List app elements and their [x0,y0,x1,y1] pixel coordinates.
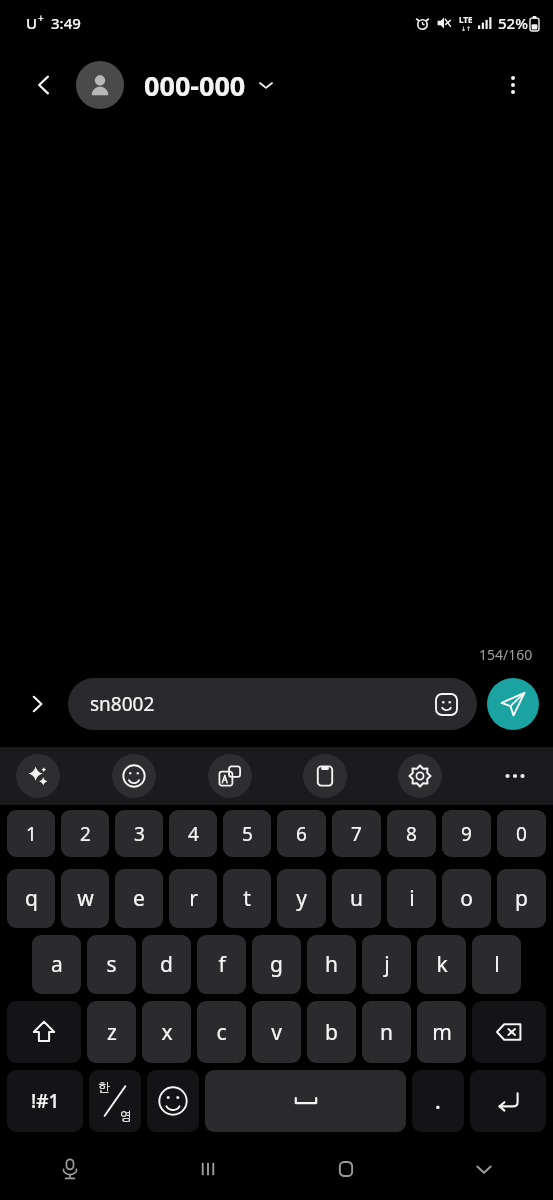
button[interactable]: 5 [223,810,271,857]
staticText: c [216,1018,227,1047]
staticText: 3:49 [51,13,81,33]
button[interactable]: 4 [169,810,217,857]
button[interactable]: More keyboard options [493,754,537,798]
button[interactable]: !#1 [7,1070,83,1132]
button[interactable]: . [412,1070,464,1132]
staticText: 4 [188,821,199,847]
button[interactable]: 000-000 [76,61,274,109]
staticText: u [350,884,363,913]
button[interactable]: m [417,1001,466,1063]
button[interactable]: y [277,869,326,928]
staticText: t [243,884,251,913]
staticText: x [161,1018,173,1047]
staticText: 2 [80,821,91,847]
button[interactable]: u [332,869,381,928]
staticText: b [325,1018,338,1047]
button[interactable]: Back [22,63,66,107]
button[interactable]: sn8002 [68,678,477,730]
staticText: e [133,884,145,913]
staticText: v [271,1018,282,1047]
staticText: 9 [461,821,472,847]
button[interactable]: Send [487,678,539,730]
button[interactable]: b [307,1001,356,1063]
staticText: 5 [242,821,253,847]
staticText: 000-000 [144,67,246,104]
button[interactable]: w [61,869,109,928]
staticText: n [380,1018,393,1047]
button[interactable]: Emoji keyboard [147,1070,199,1132]
staticText: h [325,950,338,979]
button[interactable]: Backspace [472,1001,546,1063]
staticText: LTE [459,14,473,25]
staticText: 8 [406,821,417,847]
button[interactable]: Shift [7,1001,81,1063]
button[interactable]: More options [491,63,535,107]
button[interactable]: v [252,1001,301,1063]
button[interactable]: Emoji [429,687,463,721]
button[interactable]: Settings [398,754,442,798]
staticText: y [296,884,307,913]
button[interactable]: s [87,935,136,994]
staticText: r [189,884,198,913]
button[interactable]: 8 [387,810,436,857]
staticText: z [107,1018,117,1047]
staticText: j [384,950,390,979]
button[interactable]: e [115,869,163,928]
button[interactable]: l [472,935,521,994]
button[interactable]: 0 [497,810,546,857]
button[interactable]: Translate [208,754,252,798]
button[interactable]: h [307,935,356,994]
staticText: + [38,11,44,25]
staticText: 한 [98,1079,110,1094]
button[interactable]: x [142,1001,191,1063]
staticText: 1 [26,821,37,847]
button[interactable]: g [252,935,301,994]
staticText: g [270,950,283,979]
button[interactable]: j [362,935,411,994]
button[interactable]: a [32,935,81,994]
staticText: !#1 [31,1088,60,1114]
button[interactable]: 2 [61,810,109,857]
button[interactable]: 3 [115,810,163,857]
button[interactable]: Space [205,1070,406,1132]
staticText: 3 [134,821,145,847]
button[interactable]: p [497,869,546,928]
staticText: d [160,950,173,979]
button[interactable]: Switch language [89,1070,141,1132]
button[interactable]: k [417,935,466,994]
button[interactable]: Emoji [112,754,156,798]
staticText: . [435,1087,441,1116]
staticText: 7 [351,821,362,847]
staticText: k [436,950,448,979]
button[interactable]: i [387,869,436,928]
button[interactable]: d [142,935,191,994]
staticText: 52% [498,13,528,33]
button[interactable]: 6 [277,810,326,857]
button[interactable]: t [223,869,271,928]
button[interactable]: z [87,1001,136,1063]
staticText: i [409,884,415,913]
button[interactable]: Voice input [0,1138,139,1200]
button[interactable]: o [442,869,491,928]
button[interactable]: Recents [139,1138,277,1200]
button[interactable]: Show more options [14,681,60,727]
button[interactable]: Home [277,1138,415,1200]
button[interactable]: 1 [7,810,55,857]
button[interactable]: n [362,1001,411,1063]
button[interactable]: Enter [470,1070,546,1132]
button[interactable]: q [7,869,55,928]
staticText: sn8002 [90,691,155,717]
button[interactable]: AI suggestions [16,754,60,798]
staticText: p [515,884,528,913]
button[interactable]: c [197,1001,246,1063]
button[interactable]: Hide keyboard [415,1138,553,1200]
button[interactable]: r [169,869,217,928]
button[interactable]: 9 [442,810,491,857]
staticText: ↓↑ [461,25,472,32]
staticText: a [51,950,63,979]
button[interactable]: f [197,935,246,994]
staticText: l [494,950,500,979]
button[interactable]: Clipboard [303,754,347,798]
button[interactable]: 7 [332,810,381,857]
staticText: w [77,884,94,913]
